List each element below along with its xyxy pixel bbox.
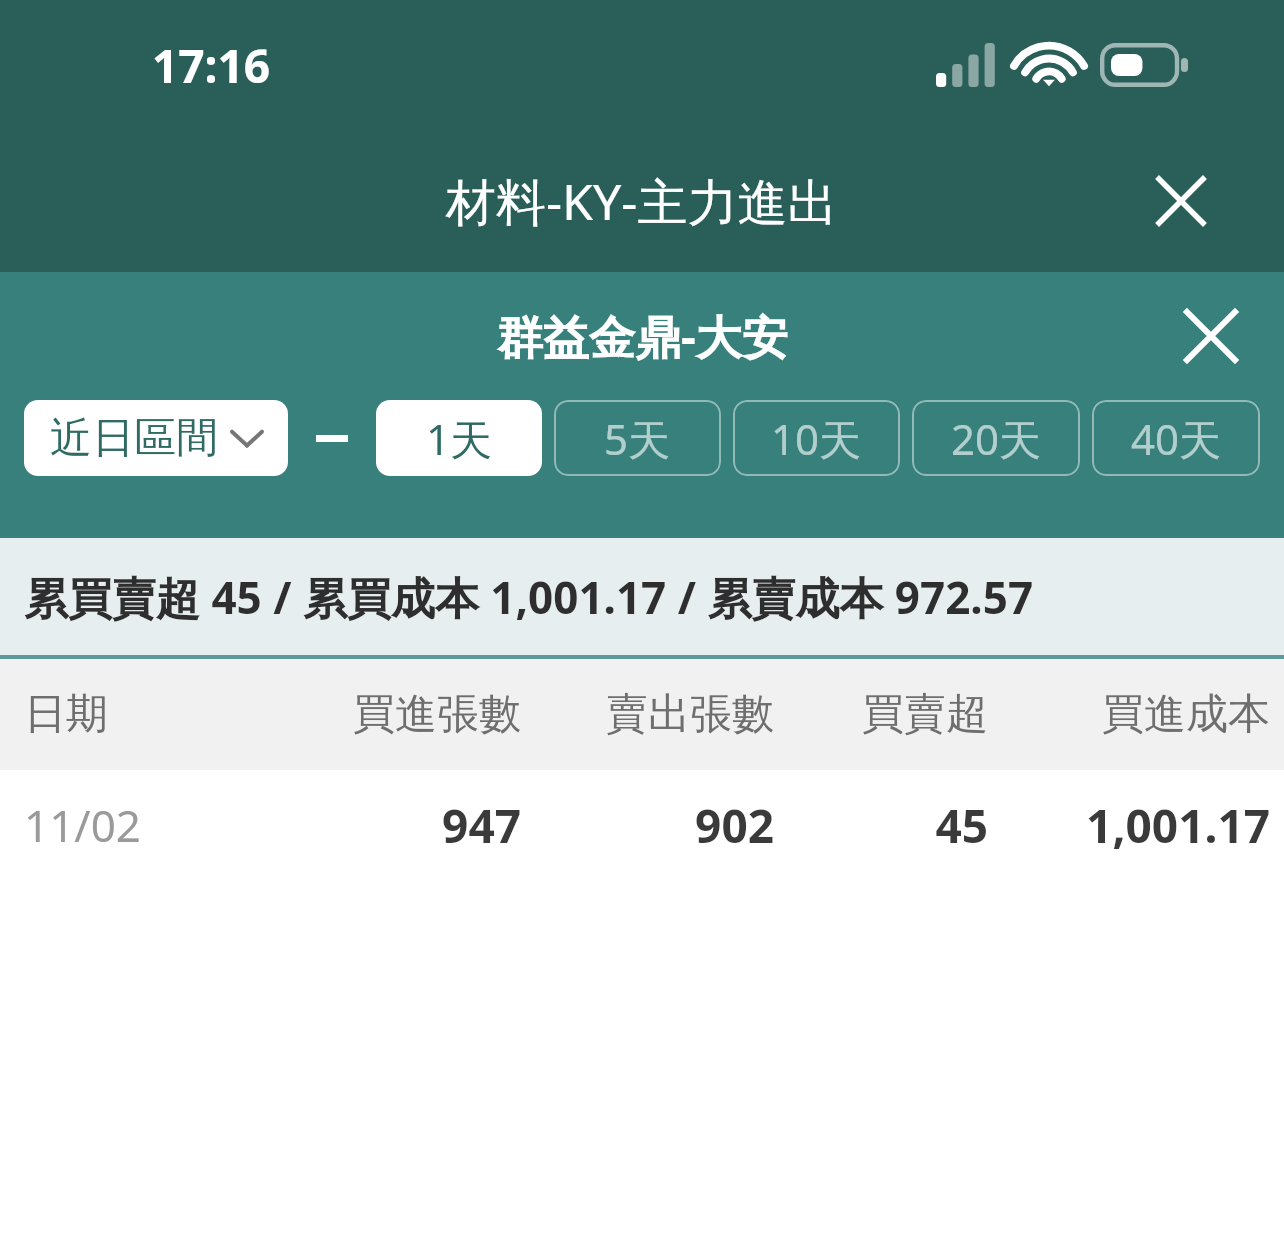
button[interactable]: 5天	[554, 400, 721, 476]
button[interactable]: 1天	[376, 400, 542, 476]
staticText: 40天	[1131, 410, 1222, 467]
button[interactable]: 40天	[1092, 400, 1260, 476]
staticText: 947	[261, 794, 521, 857]
staticText: 1天	[426, 410, 493, 467]
staticText: 群益金鼎-大安	[497, 305, 788, 368]
staticText: 買賣超	[774, 688, 988, 741]
button[interactable]: Close panel	[1168, 293, 1254, 379]
staticText: 10天	[771, 410, 862, 467]
staticText: 5天	[604, 410, 671, 467]
staticText: 賣出張數	[521, 688, 774, 741]
staticText: 近日區間	[50, 412, 218, 465]
staticText: 累買賣超 45 / 累買成本 1,001.17 / 累賣成本 972.57	[24, 567, 1034, 627]
button[interactable]: 11/02	[0, 770, 1284, 880]
button[interactable]: 10天	[733, 400, 900, 476]
staticText: 材料-KY-主力進出	[446, 167, 838, 235]
staticText: 買進成本	[988, 688, 1270, 741]
staticText: 45	[774, 794, 988, 857]
button[interactable]: 20天	[912, 400, 1080, 476]
staticText: 1,001.17	[988, 794, 1270, 857]
staticText: 20天	[951, 410, 1042, 467]
button[interactable]: 近日區間	[24, 400, 288, 476]
button[interactable]: Close	[1142, 162, 1220, 240]
staticText: 日期	[24, 688, 261, 741]
staticText: 買進張數	[261, 688, 521, 741]
staticText: 11/02	[24, 795, 261, 855]
staticText: 902	[521, 794, 774, 857]
staticText: 17:16	[152, 34, 271, 97]
